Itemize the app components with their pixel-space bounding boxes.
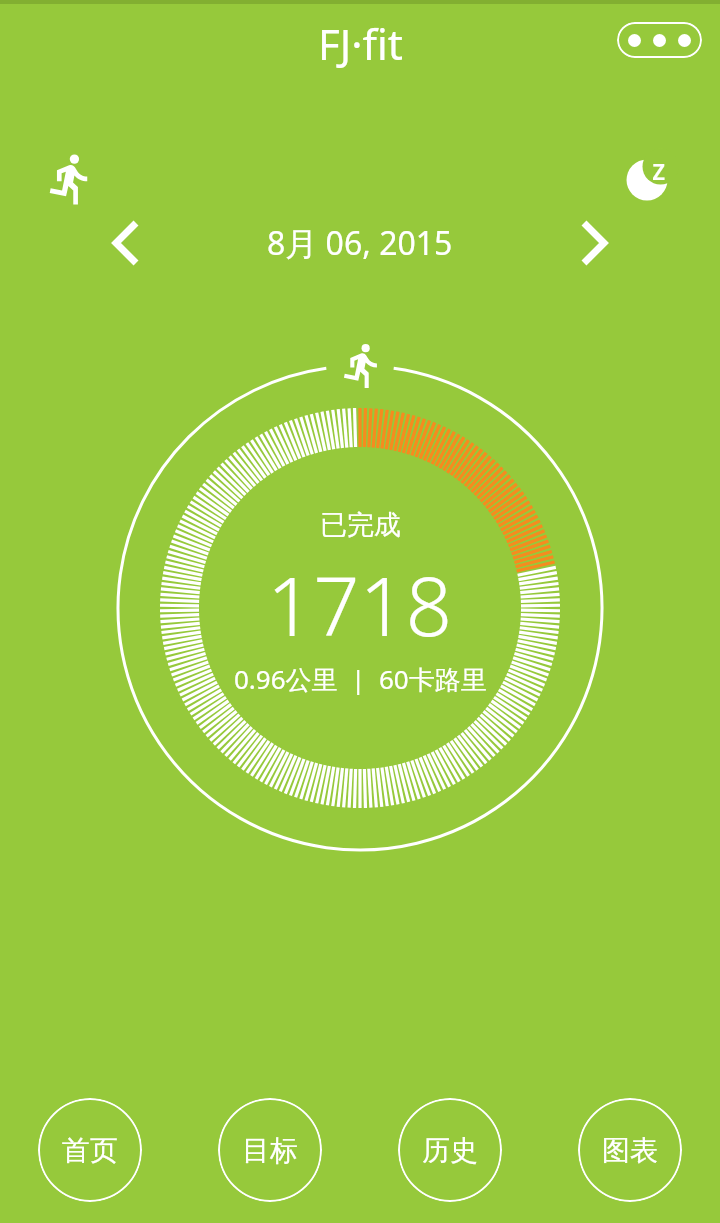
button[interactable] bbox=[618, 149, 678, 209]
button[interactable]: 图表 bbox=[578, 1098, 682, 1202]
button[interactable]: 目标 bbox=[218, 1098, 322, 1202]
button[interactable] bbox=[40, 145, 100, 205]
staticText: 已完成 bbox=[320, 508, 401, 542]
staticText: FJ·fit bbox=[318, 15, 403, 72]
staticText: 目标 bbox=[242, 1133, 298, 1168]
button[interactable] bbox=[564, 213, 624, 273]
staticText: 0.96公里 | 60卡路里 bbox=[234, 661, 487, 697]
button[interactable] bbox=[617, 22, 702, 58]
staticText: 8月 06, 2015 bbox=[267, 221, 453, 265]
staticText: z bbox=[652, 150, 666, 188]
staticText: 图表 bbox=[602, 1133, 658, 1168]
button[interactable]: 历史 bbox=[398, 1098, 502, 1202]
staticText: 历史 bbox=[422, 1133, 478, 1168]
staticText: 首页 bbox=[62, 1133, 118, 1168]
staticText: 1718 bbox=[267, 549, 453, 659]
button[interactable] bbox=[96, 213, 156, 273]
button[interactable]: 首页 bbox=[38, 1098, 142, 1202]
